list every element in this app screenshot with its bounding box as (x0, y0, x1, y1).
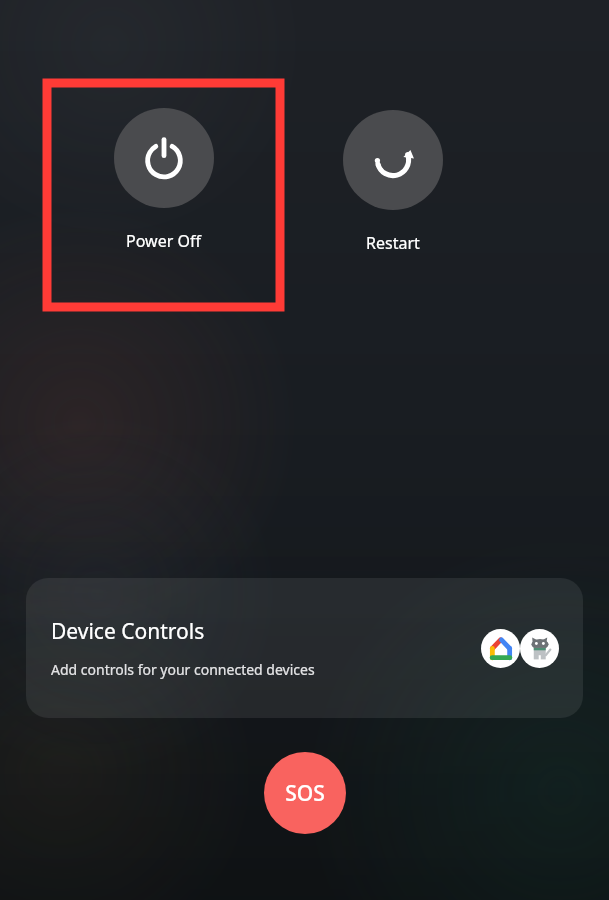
staticText: Restart (366, 232, 420, 254)
staticText: Add controls for your connected devices (51, 660, 315, 679)
button[interactable]: Power Off (47, 83, 280, 307)
staticText: Power Off (126, 230, 201, 252)
button[interactable]: Restart (288, 83, 498, 307)
button[interactable]: Emergency SOS (264, 752, 346, 834)
staticText: Device Controls (51, 617, 205, 646)
button[interactable]: Device Controls (26, 578, 583, 718)
staticText: SOS (285, 779, 325, 808)
